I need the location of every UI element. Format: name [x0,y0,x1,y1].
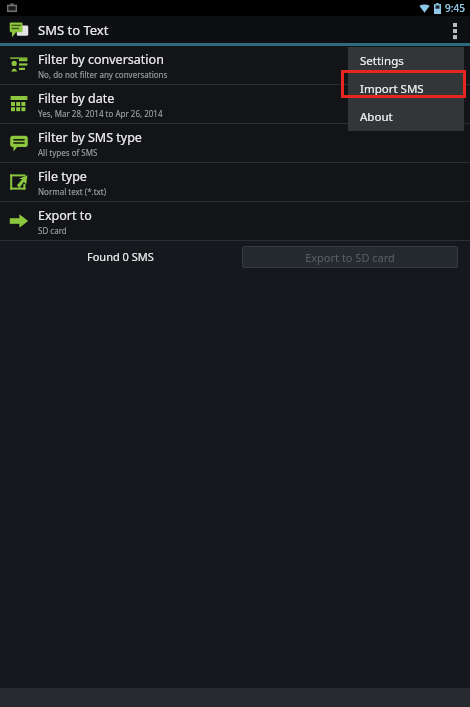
button[interactable]: Filter by conversation [0,46,470,84]
staticText: Export to [38,207,92,224]
staticText: SD card [38,225,67,236]
staticText: Filter by conversation [38,51,164,68]
staticText: No, do not filter any conversations [38,69,168,80]
staticText: Yes, Mar 28, 2014 to Apr 26, 2014 [38,108,163,119]
staticText: About [360,109,393,125]
button[interactable]: About [348,103,464,131]
staticText: Filter by date [38,90,115,107]
button[interactable]: Export to SD card [242,246,458,268]
staticText: Normal text (*.txt) [38,186,107,197]
button[interactable]: Export to [0,202,470,240]
staticText: SMS to Text [38,21,109,39]
staticText: Export to SD card [305,250,395,265]
staticText: Settings [360,53,404,69]
button[interactable]: Filter by date [0,85,470,123]
staticText: File type [38,168,87,185]
button[interactable]: More options [440,16,470,43]
staticText: Found 0 SMS [87,249,154,264]
button[interactable]: Settings [348,47,464,75]
button[interactable]: Import SMS [348,75,464,103]
staticText: Filter by SMS type [38,129,142,146]
staticText: 9:45 [445,1,465,15]
button[interactable]: File type [0,163,470,201]
staticText: All types of SMS [38,147,98,158]
staticText: Import SMS [360,81,424,97]
button[interactable]: Filter by SMS type [0,124,470,162]
